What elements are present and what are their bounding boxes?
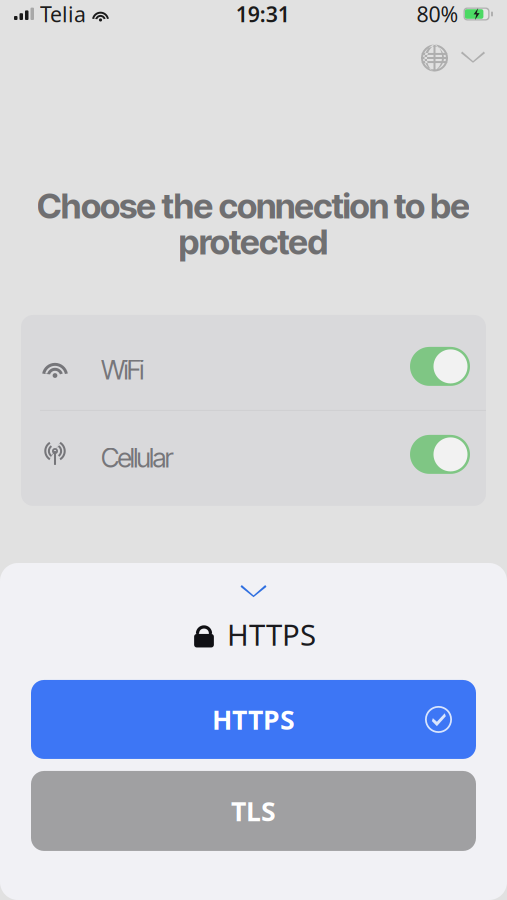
staticText: 80% [416, 0, 458, 28]
staticText: Telia [40, 0, 86, 28]
button[interactable]: Collapse protocol sheet [223, 577, 283, 607]
staticText: 19:31 [236, 0, 290, 28]
button[interactable]: Cellular [21, 411, 486, 498]
staticText: Cellular [101, 442, 174, 474]
staticText: Choose the connection to be [37, 185, 470, 227]
button[interactable]: Language [416, 32, 453, 84]
staticText: HTTPS [227, 615, 316, 654]
staticText: HTTPS [212, 702, 295, 737]
button[interactable]: HTTPS [31, 680, 476, 759]
button[interactable]: WiFi [21, 323, 486, 410]
button[interactable]: Collapse [453, 34, 493, 82]
button[interactable]: TLS [31, 771, 476, 851]
staticText: protected [179, 221, 328, 263]
staticText: TLS [231, 793, 276, 829]
staticText: WiFi [101, 354, 144, 386]
